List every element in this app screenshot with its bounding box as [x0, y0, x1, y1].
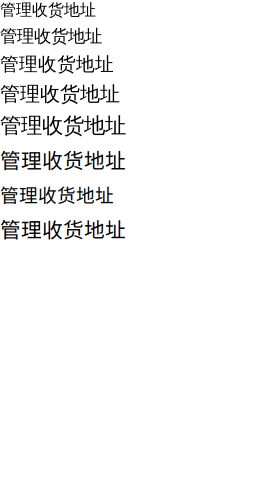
staticText: 管理收货地址 [0, 145, 126, 174]
staticText: 管理收货地址 [0, 53, 114, 76]
staticText: 管理收货地址 [0, 26, 102, 47]
staticText: 管理收货地址 [0, 112, 126, 139]
staticText: 管理收货地址 [0, 214, 126, 243]
staticText: 管理收货地址 [0, 0, 96, 20]
staticText: 管理收货地址 [0, 181, 114, 208]
staticText: 管理收货地址 [0, 82, 120, 106]
